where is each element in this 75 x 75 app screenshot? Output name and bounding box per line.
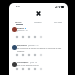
staticText: @benbern · 2h <box>28 44 39 46</box>
staticText: did anyone else do this with a trademark… <box>17 47 62 49</box>
button[interactable]: Tech news <box>48 19 68 24</box>
staticText: ben.bernard <box>17 44 27 46</box>
button[interactable]: Following <box>28 19 48 24</box>
staticText: @devblock · 2h <box>17 29 28 31</box>
staticText: charlesofbean <box>17 61 29 63</box>
staticText: 9:41 <box>16 5 20 8</box>
staticText: @chb · 4h <box>30 61 37 63</box>
staticText: DevBlock <box>17 27 25 29</box>
staticText: trademark <box>17 50 25 52</box>
button[interactable]: For you <box>9 19 28 24</box>
staticText: For you <box>15 21 22 23</box>
button[interactable]: X home <box>36 11 41 16</box>
button[interactable]: ben.bernard <box>9 43 68 60</box>
button[interactable]: charlesofbean <box>9 60 68 75</box>
staticText: reply to this awesome post yes <box>17 64 39 66</box>
staticText: Tech news <box>54 21 63 23</box>
staticText: Following <box>34 21 42 23</box>
button[interactable]: DevBlock <box>9 25 68 44</box>
